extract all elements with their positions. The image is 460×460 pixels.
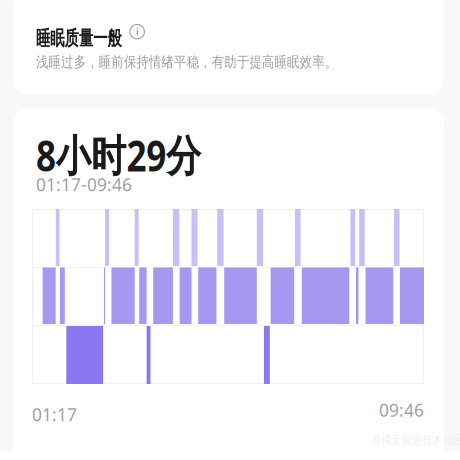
staticText: 浅睡过多，睡前保持情绪平稳，有助于提高睡眠效率。 [36, 53, 396, 71]
staticText: @稀土掘金技术社区 [372, 431, 460, 447]
staticText: 01:17 [32, 403, 77, 426]
staticText: 睡眠质量一般 [36, 26, 156, 51]
staticText: 01:17-09:46 [36, 173, 132, 196]
staticText: 09:46 [379, 398, 424, 421]
staticText: 8小时29分 [36, 126, 237, 183]
